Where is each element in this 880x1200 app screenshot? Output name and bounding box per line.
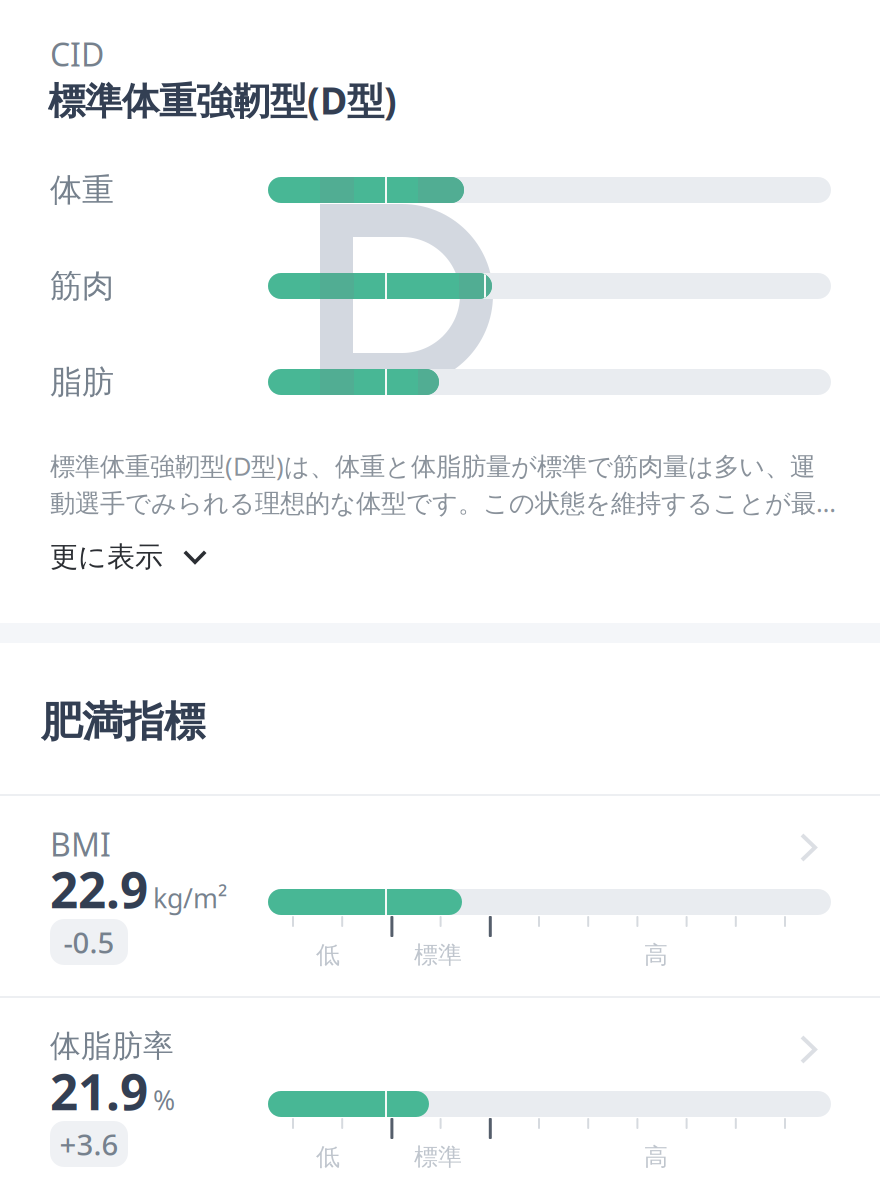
staticText: 標準体重強靭型(D型)は、体重と体脂肪量が標準で筋肉量は多い、運 [50, 449, 815, 483]
staticText: 標準 [414, 940, 462, 970]
staticText: 更に表示 [50, 540, 163, 574]
staticText: 高 [644, 1142, 668, 1172]
staticText: 筋肉 [50, 266, 114, 306]
staticText: 低 [316, 940, 340, 970]
staticText: 22.9 [50, 856, 148, 922]
button[interactable]: 体脂肪率 [0, 998, 880, 1198]
staticText: 脂肪 [50, 362, 114, 402]
staticText: CID [50, 33, 104, 75]
staticText: 動選手でみられる理想的な体型です。この状態を維持することが最… [50, 486, 836, 519]
staticText: 21.9 [50, 1058, 148, 1124]
button[interactable]: 更に表示 [0, 523, 350, 577]
staticText: 体重 [50, 170, 114, 210]
staticText: BMI [50, 823, 111, 865]
staticText: 高 [644, 940, 668, 970]
staticText: % [153, 1082, 175, 1117]
staticText: 低 [316, 1142, 340, 1172]
staticText: +3.6 [59, 1124, 118, 1163]
staticText: 体脂肪率 [50, 1027, 174, 1065]
staticText: 標準体重強靭型(D型) [48, 75, 397, 125]
staticText: kg/m² [153, 880, 227, 915]
staticText: 肥満指標 [41, 697, 205, 747]
button[interactable]: BMI [0, 796, 880, 996]
staticText: -0.5 [63, 922, 114, 961]
staticText: 標準 [414, 1142, 462, 1172]
